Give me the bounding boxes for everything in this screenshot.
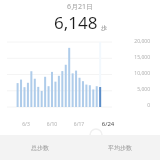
staticText: 歩 xyxy=(101,24,107,32)
staticText: 平均步数 xyxy=(108,144,132,152)
staticText: 6/3 xyxy=(16,121,36,128)
staticText: 6/17 xyxy=(69,121,89,128)
staticText: 6/10 xyxy=(42,121,62,128)
staticText: 6,148 xyxy=(54,11,98,34)
button[interactable]: 总步数 xyxy=(0,135,80,160)
button[interactable]: 平均步数 xyxy=(80,135,160,160)
staticText: 10,000 xyxy=(110,70,150,77)
staticText: 6月21日 xyxy=(0,2,160,12)
staticText: 5,000 xyxy=(110,86,150,93)
staticText: 0 xyxy=(110,102,150,109)
staticText: 总步数 xyxy=(31,144,49,152)
staticText: 6/24 xyxy=(98,120,118,128)
staticText: 20,000 xyxy=(110,38,150,45)
staticText: 15,000 xyxy=(110,54,150,61)
